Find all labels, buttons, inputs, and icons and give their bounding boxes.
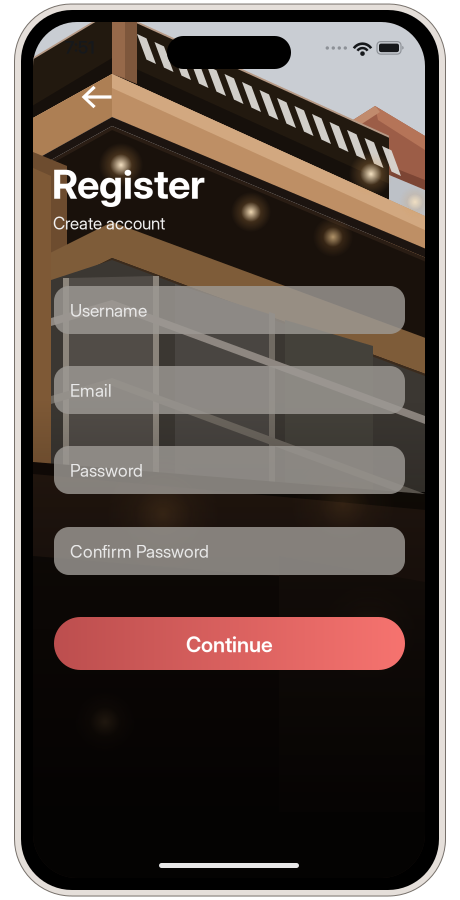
staticText: Confirm Password [70,541,209,562]
staticText: Continue [186,632,273,657]
staticText: Register [52,160,205,208]
button[interactable]: Email [54,366,405,414]
staticText: Create account [53,213,165,233]
button[interactable]: Back [79,77,117,117]
button[interactable]: Username [54,286,405,334]
button[interactable]: Password [54,446,405,494]
staticText: Email [70,380,112,401]
staticText: Username [70,300,147,321]
staticText: Password [70,460,143,481]
staticText: 7:51 [65,37,95,58]
button[interactable]: Continue [54,617,405,670]
button[interactable]: Confirm Password [54,527,405,575]
